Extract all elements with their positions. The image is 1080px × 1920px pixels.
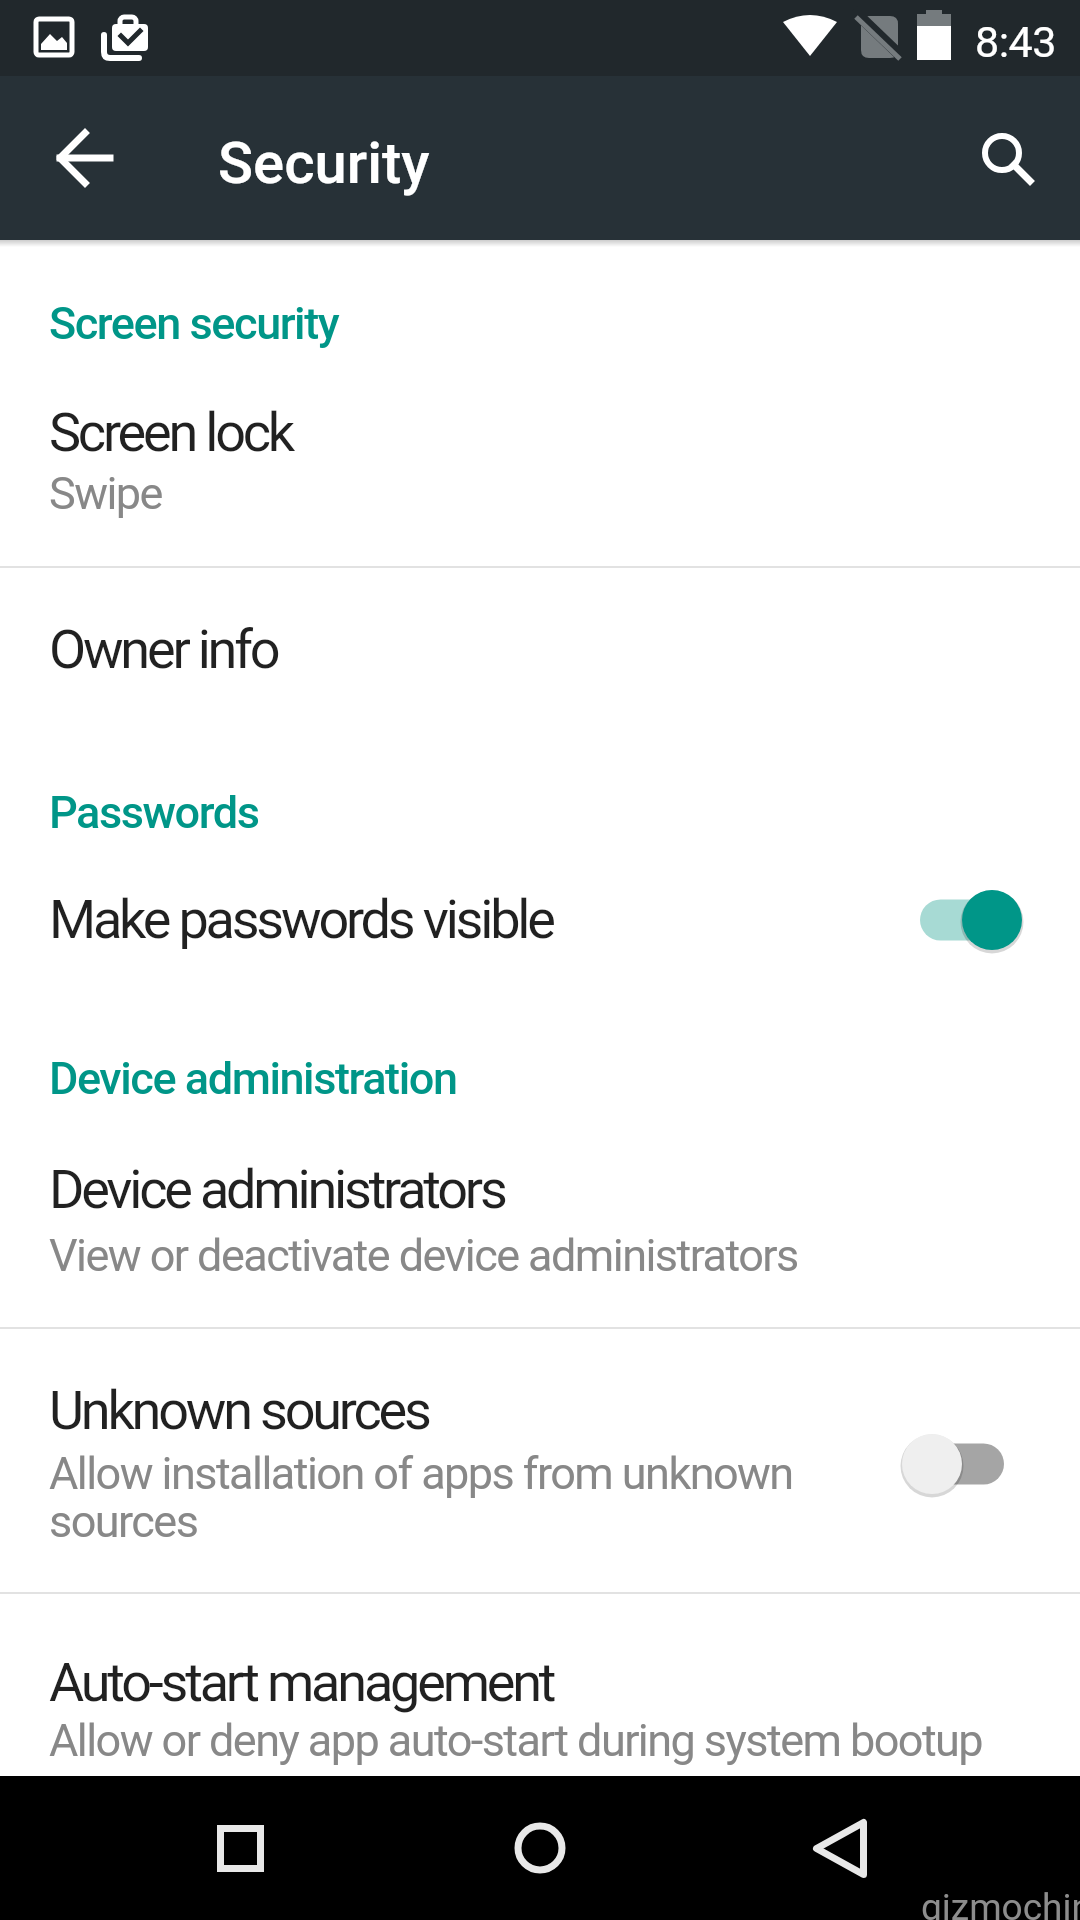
staticText: Owner info xyxy=(49,618,278,681)
button[interactable]: Owner info xyxy=(0,590,1080,760)
button[interactable] xyxy=(902,890,1022,950)
button[interactable]: Unknown sources xyxy=(0,1329,1080,1592)
staticText: Device administration xyxy=(49,1052,457,1105)
staticText: Screen security xyxy=(49,297,339,350)
button[interactable] xyxy=(465,1776,615,1920)
staticText: Screen lock xyxy=(49,401,292,464)
staticText: Allow or deny app auto-start during syst… xyxy=(49,1714,983,1767)
button[interactable]: Make passwords visible xyxy=(0,850,1080,1000)
button[interactable]: Auto-start management xyxy=(0,1594,1080,1776)
staticText: View or deactivate device administrators xyxy=(49,1229,798,1282)
button[interactable]: Screen lock xyxy=(0,365,1080,566)
staticText: 8:43 xyxy=(975,17,1056,67)
button[interactable] xyxy=(957,108,1057,208)
staticText: Security xyxy=(218,129,430,197)
staticText: Swipe xyxy=(49,467,162,520)
button[interactable] xyxy=(902,1434,1022,1494)
button[interactable]: Device administrators xyxy=(0,1130,1080,1327)
staticText: Make passwords visible xyxy=(49,888,553,951)
staticText: Unknown sources xyxy=(49,1379,429,1442)
staticText: Auto-start management xyxy=(49,1651,554,1714)
button[interactable] xyxy=(765,1776,915,1920)
staticText: Allow installation of apps from unknown … xyxy=(49,1447,793,1548)
staticText: gizmochina xyxy=(921,1886,1080,1920)
staticText: Device administrators xyxy=(49,1158,505,1221)
button[interactable] xyxy=(165,1776,315,1920)
staticText: Passwords xyxy=(49,786,259,839)
button[interactable] xyxy=(35,108,135,208)
